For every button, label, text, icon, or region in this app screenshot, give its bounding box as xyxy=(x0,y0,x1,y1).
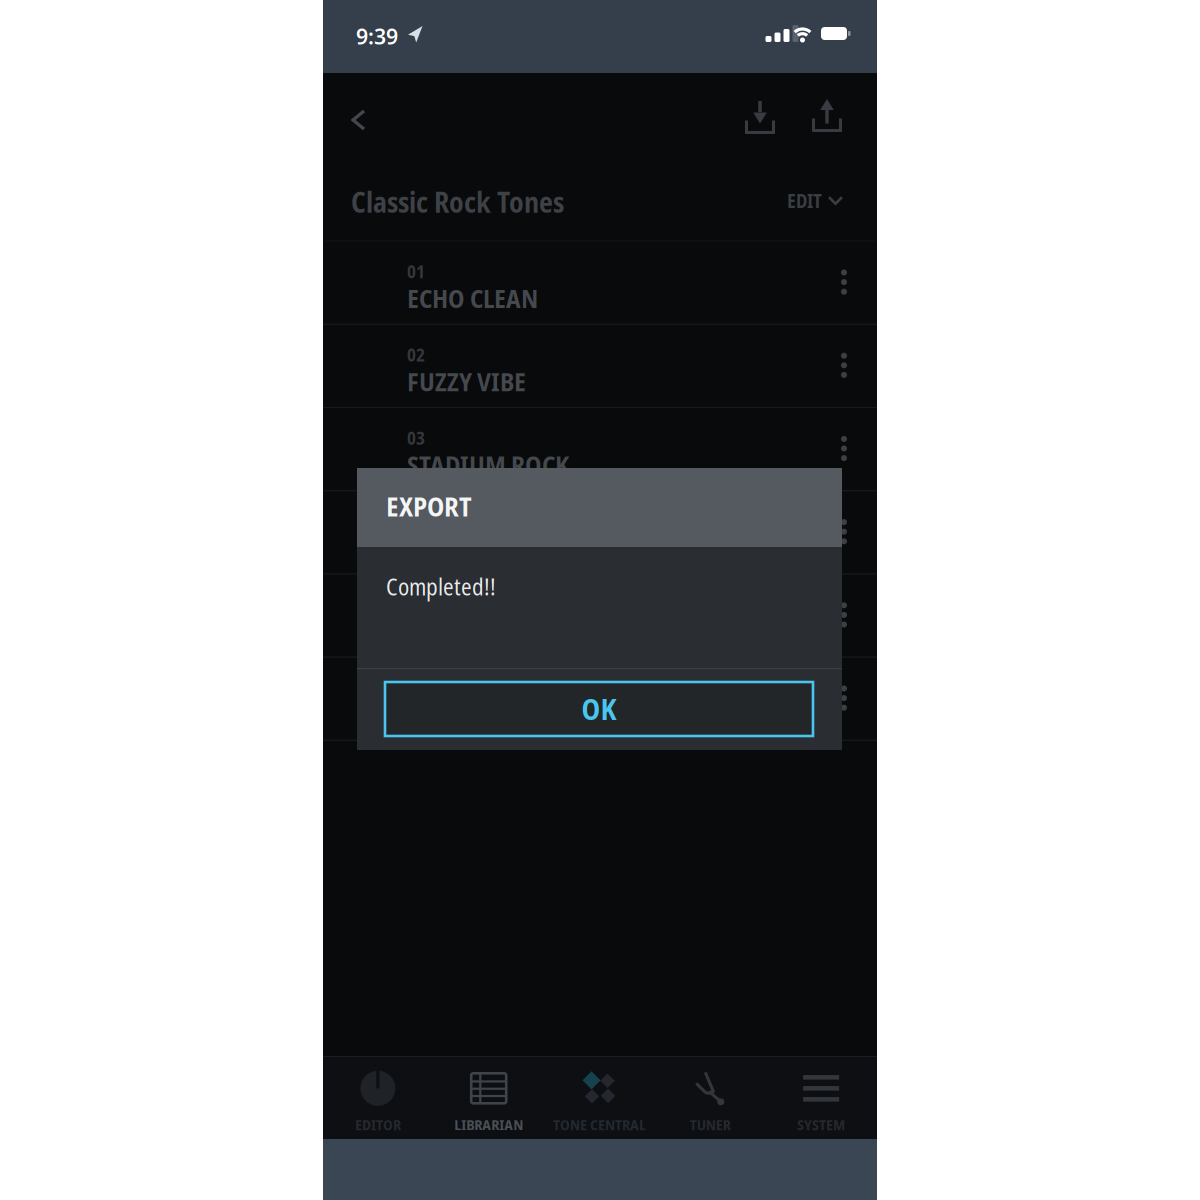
staticText: LIBRARIAN xyxy=(454,1114,523,1135)
button[interactable]: EDIT xyxy=(787,188,842,213)
staticText: STADIUM ROCK xyxy=(407,447,569,482)
button[interactable]: Options xyxy=(833,511,855,552)
staticText: TONE CENTRAL xyxy=(553,1114,646,1135)
button[interactable]: Options xyxy=(833,594,855,635)
button[interactable]: Options xyxy=(833,428,855,469)
staticText: Classic Rock Tones xyxy=(351,183,564,221)
staticText: 03 xyxy=(407,425,425,450)
staticText: FUZZY VIBE xyxy=(407,364,526,399)
button[interactable]: 03 xyxy=(407,425,787,491)
staticText: OK xyxy=(581,689,616,728)
button[interactable]: TUNER xyxy=(651,1066,769,1138)
button[interactable]: EDITOR xyxy=(319,1066,437,1138)
staticText: TUNER xyxy=(690,1114,731,1135)
staticText: 9:39 xyxy=(356,22,398,50)
button[interactable]: SYSTEM xyxy=(762,1066,880,1138)
staticText: ECHO CLEAN xyxy=(407,281,538,315)
button[interactable]: Back xyxy=(343,101,375,139)
staticText: EXPORT xyxy=(386,488,472,524)
staticText: EDIT xyxy=(787,188,822,213)
button[interactable]: LIBRARIAN xyxy=(430,1066,548,1138)
staticText: 01 xyxy=(407,259,425,283)
button[interactable]: OK xyxy=(385,682,813,736)
button[interactable]: TONE CENTRAL xyxy=(540,1066,658,1138)
button[interactable]: Options xyxy=(833,261,855,303)
button[interactable]: Import xyxy=(739,94,781,140)
button[interactable]: 01 xyxy=(407,259,787,325)
staticText: SYSTEM xyxy=(797,1114,845,1135)
staticText: Completed!! xyxy=(386,571,496,602)
button[interactable]: Export xyxy=(806,92,848,138)
staticText: 02 xyxy=(407,342,425,367)
button[interactable]: Options xyxy=(833,345,855,386)
button[interactable]: Options xyxy=(833,677,855,719)
staticText: EDITOR xyxy=(355,1114,401,1135)
button[interactable]: 02 xyxy=(407,342,787,408)
